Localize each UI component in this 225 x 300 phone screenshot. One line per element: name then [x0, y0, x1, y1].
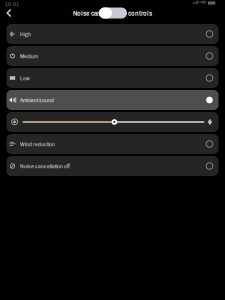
button[interactable]: Wind reduction — [6, 134, 218, 154]
staticText: 10:01 — [5, 0, 19, 8]
button[interactable]: Noise cancellation off — [6, 156, 218, 176]
staticText: Medium — [20, 52, 38, 60]
staticText: Wind reduction — [20, 140, 55, 148]
staticText: Noise cancellation controls — [73, 8, 152, 18]
button[interactable]: Ambient sound — [6, 90, 218, 110]
button[interactable]: Noise cancellation toggle — [99, 7, 127, 18]
button[interactable]: Medium — [6, 46, 218, 66]
staticText: Low — [20, 74, 30, 82]
button[interactable]: High — [6, 24, 218, 44]
staticText: Ambient sound — [20, 96, 54, 104]
staticText: High — [20, 30, 31, 38]
staticText: Noise cancellation off — [20, 162, 70, 170]
button[interactable]: Low — [6, 68, 218, 88]
button[interactable]: Back — [1, 4, 17, 22]
